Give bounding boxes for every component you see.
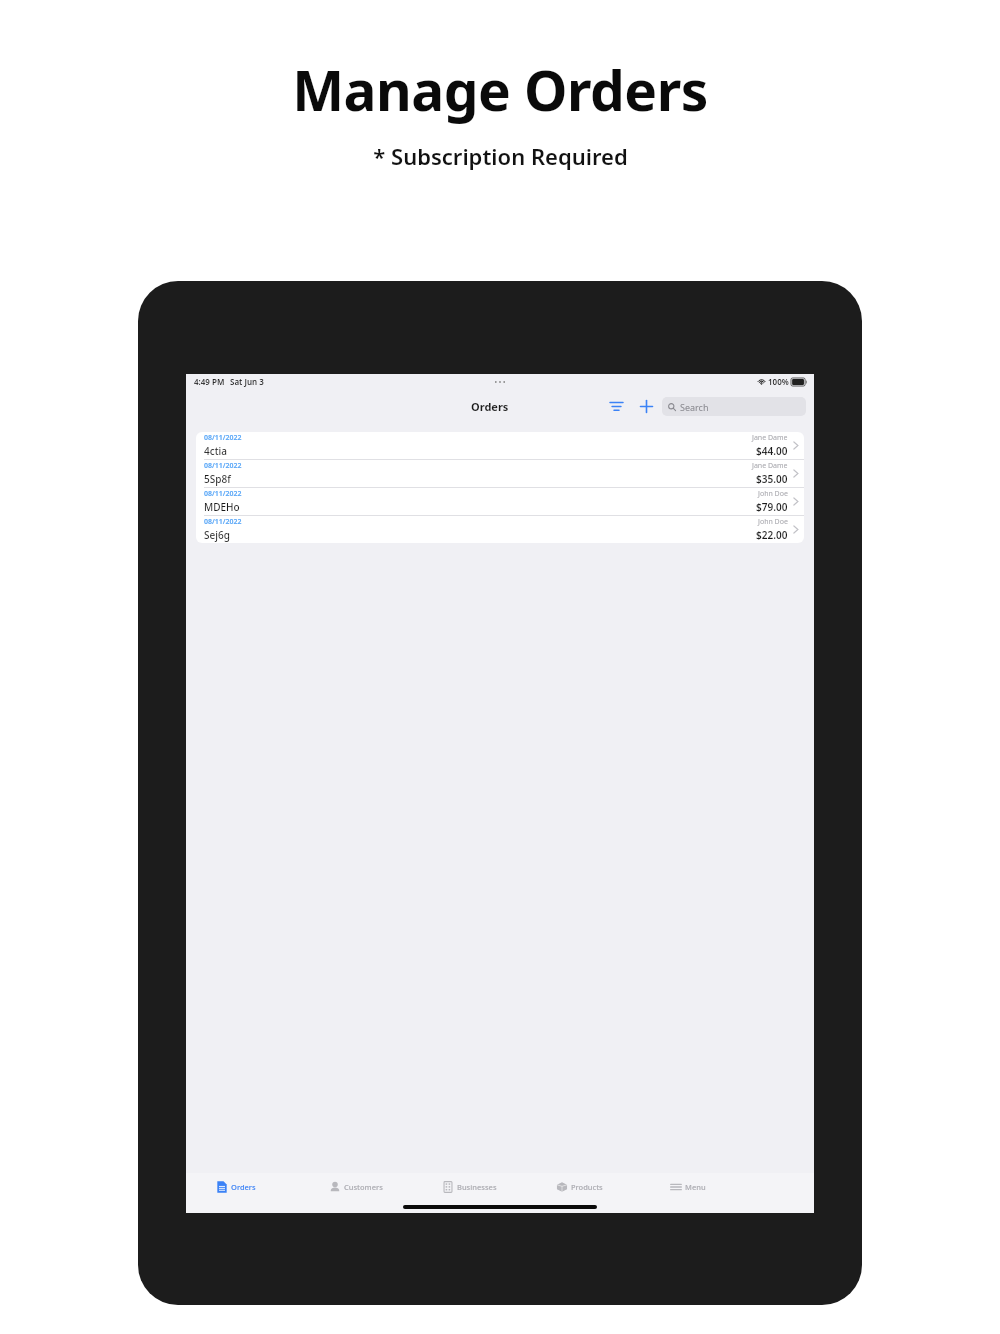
staticText: John Doe: [758, 489, 788, 499]
staticText: Jane Dame: [752, 433, 788, 443]
staticText: * Subscription Required: [373, 141, 628, 171]
staticText: Orders: [231, 1182, 256, 1192]
button[interactable]: 08/11/2022: [196, 460, 804, 487]
button[interactable]: 08/11/2022: [196, 432, 804, 459]
staticText: Customers: [344, 1182, 383, 1192]
button[interactable]: Search: [662, 397, 806, 416]
button[interactable]: Businesses: [442, 1173, 556, 1201]
staticText: Manage Orders: [292, 52, 708, 127]
button[interactable]: Menu: [670, 1173, 784, 1201]
staticText: Orders: [471, 399, 509, 414]
staticText: 08/11/2022: [204, 433, 242, 443]
button[interactable]: 08/11/2022: [196, 488, 804, 515]
staticText: 4:49 PM: [194, 376, 225, 387]
button[interactable]: Products: [556, 1173, 670, 1201]
staticText: John Doe: [758, 517, 788, 527]
staticText: MDEHo: [204, 500, 240, 514]
staticText: $79.00: [756, 500, 788, 514]
staticText: 08/11/2022: [204, 489, 242, 499]
staticText: Sat Jun 3: [230, 376, 264, 387]
staticText: 4ctia: [204, 444, 227, 458]
staticText: 08/11/2022: [204, 517, 242, 527]
staticText: Search: [680, 401, 709, 413]
button[interactable]: 08/11/2022: [196, 516, 804, 543]
staticText: Businesses: [457, 1182, 497, 1192]
button[interactable]: Add order: [635, 395, 657, 417]
staticText: $22.00: [756, 528, 788, 542]
staticText: 5Sp8f: [204, 472, 231, 486]
staticText: Products: [571, 1182, 603, 1192]
staticText: Menu: [685, 1182, 706, 1192]
staticText: 100%: [768, 376, 789, 387]
button[interactable]: Orders: [216, 1173, 329, 1201]
staticText: $35.00: [756, 472, 788, 486]
button[interactable]: Filter: [605, 395, 627, 417]
staticText: Sej6g: [204, 528, 230, 542]
staticText: Jane Dame: [752, 461, 788, 471]
button[interactable]: Customers: [329, 1173, 442, 1201]
staticText: 08/11/2022: [204, 461, 242, 471]
staticText: $44.00: [756, 444, 788, 458]
